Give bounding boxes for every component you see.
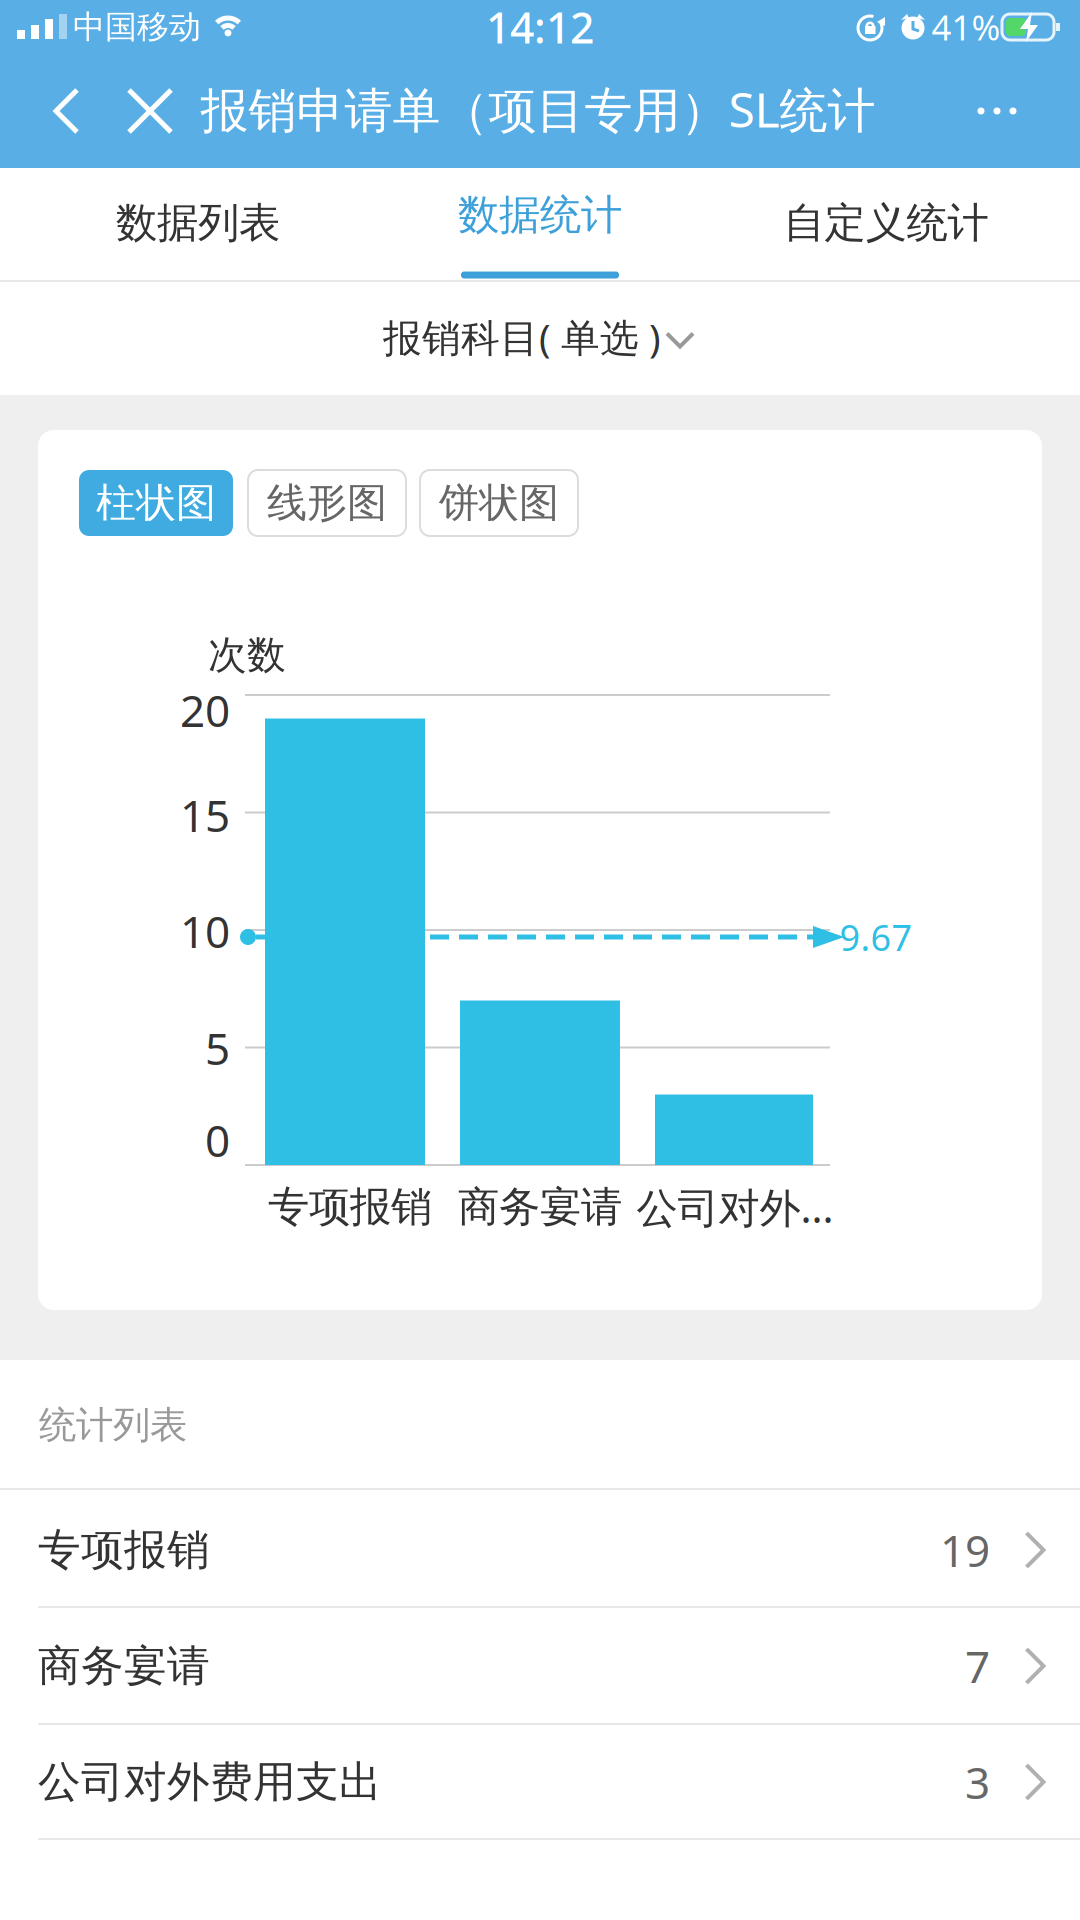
staticText: 9.67: [839, 913, 912, 961]
staticText: 10: [180, 902, 230, 960]
staticText: 中国移动: [73, 7, 201, 47]
button[interactable]: 专项报销: [0, 1492, 1080, 1608]
staticText: 41%: [931, 4, 1000, 50]
button[interactable]: Back: [51, 86, 83, 136]
button[interactable]: 商务宴请: [0, 1608, 1080, 1724]
staticText: 3: [965, 1753, 990, 1811]
button[interactable]: Close: [127, 88, 173, 134]
button[interactable]: 饼状图: [420, 470, 578, 536]
staticText: 19: [940, 1521, 990, 1579]
staticText: 数据列表: [116, 198, 280, 248]
staticText: 专项报销: [268, 1182, 432, 1232]
staticText: 数据统计: [458, 190, 622, 240]
staticText: 公司对外费用支出: [38, 1756, 382, 1808]
staticText: 次数: [208, 631, 286, 679]
staticText: 柱状图: [96, 478, 216, 527]
staticText: 专项报销: [38, 1524, 210, 1576]
button[interactable]: 柱状图: [79, 470, 233, 536]
staticText: 公司对外...: [636, 1180, 833, 1234]
staticText: 商务宴请: [458, 1182, 622, 1232]
button[interactable]: 报销科目( 单选 ): [0, 282, 1080, 395]
staticText: 报销申请单（项目专用）SL统计: [200, 77, 875, 141]
staticText: 0: [205, 1111, 230, 1169]
staticText: 报销科目( 单选 ): [383, 311, 661, 363]
staticText: 自定义统计: [783, 198, 988, 248]
button[interactable]: 数据统计: [395, 168, 685, 278]
staticText: 14:12: [486, 0, 594, 55]
staticText: 饼状图: [439, 478, 559, 527]
staticText: 7: [965, 1637, 990, 1695]
button[interactable]: 线形图: [248, 470, 406, 536]
staticText: 线形图: [267, 478, 387, 527]
staticText: 5: [205, 1019, 230, 1077]
button[interactable]: 公司对外费用支出: [0, 1724, 1080, 1840]
staticText: 20: [180, 681, 230, 739]
staticText: 统计列表: [39, 1402, 187, 1448]
button[interactable]: 数据列表: [53, 168, 343, 278]
button[interactable]: More: [962, 83, 1032, 139]
staticText: 商务宴请: [38, 1640, 210, 1692]
button[interactable]: 自定义统计: [741, 168, 1031, 278]
staticText: 15: [180, 786, 230, 844]
